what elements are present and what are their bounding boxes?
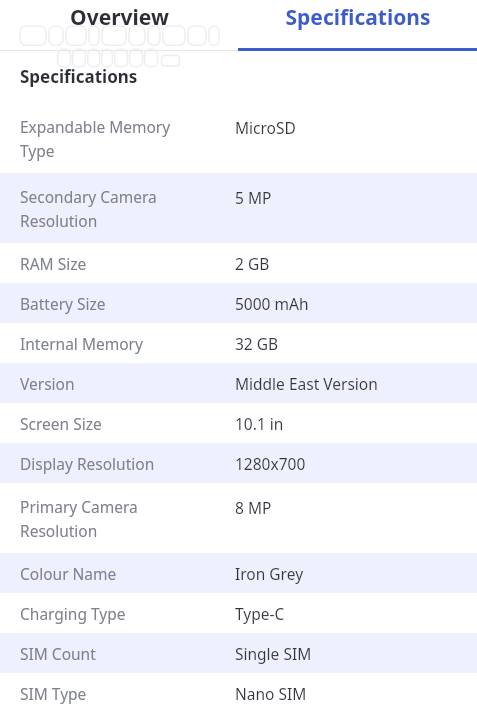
staticText: SIM Count: [20, 643, 235, 664]
staticText: Internal Memory: [20, 333, 235, 354]
staticText: SIM Type: [20, 683, 235, 704]
staticText: Iron Grey: [235, 563, 304, 584]
staticText: 5000 mAh: [235, 293, 309, 314]
button[interactable]: Version: [0, 363, 477, 403]
button[interactable]: RAM Size: [0, 243, 477, 283]
button[interactable]: Charging Type: [0, 593, 477, 633]
staticText: Secondary Camera Resolution: [20, 186, 235, 231]
staticText: 10.1 in: [235, 413, 284, 434]
staticText: Type-C: [235, 603, 285, 624]
staticText: Expandable Memory Type: [20, 116, 235, 161]
button[interactable]: Expandable Memory Type: [0, 103, 477, 173]
staticText: Specifications: [285, 3, 431, 32]
button[interactable]: SIM Type: [0, 673, 477, 713]
button[interactable]: Battery Size: [0, 283, 477, 323]
staticText: RAM Size: [20, 253, 235, 274]
button[interactable]: SIM Count: [0, 633, 477, 673]
staticText: Charging Type: [20, 603, 235, 624]
button[interactable]: Display Resolution: [0, 443, 477, 483]
button[interactable]: Specifications: [238, 0, 477, 50]
button[interactable]: Primary Camera Resolution: [0, 483, 477, 553]
staticText: Primary Camera Resolution: [20, 496, 235, 541]
staticText: Version: [20, 373, 235, 394]
staticText: Screen Size: [20, 413, 235, 434]
staticText: Overview: [70, 3, 169, 32]
staticText: Nano SIM: [235, 683, 307, 704]
staticText: Battery Size: [20, 293, 235, 314]
staticText: Display Resolution: [20, 453, 235, 474]
staticText: Middle East Version: [235, 373, 378, 394]
staticText: Single SIM: [235, 643, 312, 664]
staticText: 32 GB: [235, 333, 279, 354]
staticText: 5 MP: [235, 187, 272, 208]
staticText: Specifications: [20, 65, 138, 88]
staticText: Colour Name: [20, 563, 235, 584]
staticText: 1280x700: [235, 453, 306, 474]
staticText: MicroSD: [235, 117, 296, 138]
staticText: 2 GB: [235, 253, 270, 274]
button[interactable]: Secondary Camera Resolution: [0, 173, 477, 243]
button[interactable]: Screen Size: [0, 403, 477, 443]
button[interactable]: Overview: [0, 0, 238, 50]
button[interactable]: Colour Name: [0, 553, 477, 593]
staticText: 8 MP: [235, 497, 272, 518]
button[interactable]: Internal Memory: [0, 323, 477, 363]
